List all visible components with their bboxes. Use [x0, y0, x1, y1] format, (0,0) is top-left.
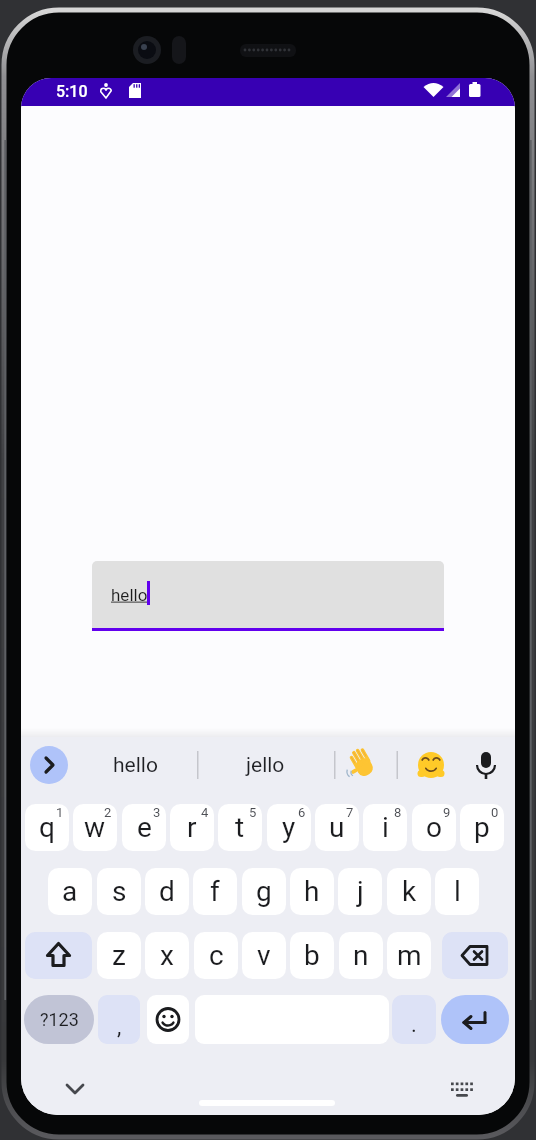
- button[interactable]: n: [339, 932, 383, 979]
- button[interactable]: p: [460, 804, 504, 851]
- button[interactable]: [30, 746, 68, 784]
- button[interactable]: t: [218, 804, 262, 851]
- button[interactable]: s: [97, 868, 141, 915]
- button[interactable]: [410, 746, 452, 784]
- staticText: 6: [298, 805, 306, 820]
- button[interactable]: [199, 1094, 335, 1112]
- button[interactable]: q: [25, 804, 69, 851]
- button[interactable]: jello: [221, 746, 309, 784]
- button[interactable]: e: [122, 804, 166, 851]
- staticText: s: [112, 875, 127, 908]
- staticText: o: [426, 811, 442, 844]
- button[interactable]: v: [242, 932, 286, 979]
- staticText: h: [304, 875, 320, 908]
- button[interactable]: j: [338, 868, 382, 915]
- staticText: hello: [113, 753, 158, 778]
- button[interactable]: hello: [92, 561, 444, 628]
- staticText: jello: [246, 753, 285, 778]
- staticText: 3: [153, 805, 161, 820]
- button[interactable]: ?123: [24, 995, 94, 1044]
- button[interactable]: d: [145, 868, 189, 915]
- button[interactable]: f: [193, 868, 237, 915]
- staticText: 2: [104, 805, 112, 820]
- staticText: r: [187, 811, 197, 844]
- staticText: l: [454, 875, 461, 908]
- button[interactable]: [57, 1071, 93, 1103]
- staticText: u: [329, 811, 345, 844]
- staticText: w: [84, 811, 106, 844]
- button[interactable]: ,: [98, 995, 140, 1044]
- button[interactable]: .: [392, 995, 436, 1044]
- staticText: z: [112, 939, 126, 972]
- staticText: e: [137, 811, 152, 844]
- staticText: 8: [394, 805, 402, 820]
- button[interactable]: u: [315, 804, 359, 851]
- button[interactable]: w: [73, 804, 117, 851]
- button[interactable]: hello: [91, 746, 179, 784]
- staticText: 5: [249, 805, 257, 820]
- staticText: k: [402, 875, 417, 908]
- button[interactable]: [441, 995, 509, 1044]
- button[interactable]: [442, 932, 508, 979]
- staticText: y: [282, 811, 296, 844]
- staticText: v: [257, 939, 271, 972]
- staticText: 1: [56, 805, 64, 820]
- staticText: ?123: [40, 1009, 79, 1030]
- staticText: p: [474, 811, 490, 844]
- staticText: c: [209, 939, 224, 972]
- button[interactable]: [25, 932, 92, 979]
- button[interactable]: h: [290, 868, 334, 915]
- staticText: 0: [491, 805, 499, 820]
- button[interactable]: z: [97, 932, 141, 979]
- staticText: 5:10: [56, 82, 88, 101]
- staticText: d: [159, 875, 175, 908]
- staticText: .: [411, 1012, 417, 1038]
- staticText: a: [62, 875, 78, 908]
- button[interactable]: [147, 995, 189, 1044]
- staticText: 4: [201, 805, 209, 820]
- staticText: i: [382, 811, 389, 844]
- button[interactable]: [342, 746, 384, 784]
- button[interactable]: b: [290, 932, 334, 979]
- button[interactable]: y: [267, 804, 311, 851]
- button[interactable]: o: [412, 804, 456, 851]
- button[interactable]: x: [145, 932, 189, 979]
- staticText: 7: [346, 805, 354, 820]
- staticText: n: [353, 939, 369, 972]
- staticText: x: [160, 939, 174, 972]
- button[interactable]: i: [363, 804, 407, 851]
- staticText: hello: [111, 585, 148, 605]
- button[interactable]: k: [387, 868, 431, 915]
- button[interactable]: a: [48, 868, 92, 915]
- button[interactable]: c: [194, 932, 238, 979]
- staticText: q: [39, 811, 55, 844]
- staticText: g: [256, 875, 272, 908]
- button[interactable]: l: [435, 868, 479, 915]
- button[interactable]: m: [387, 932, 431, 979]
- staticText: f: [210, 875, 220, 908]
- button[interactable]: r: [170, 804, 214, 851]
- staticText: m: [397, 939, 422, 972]
- staticText: 9: [443, 805, 451, 820]
- button[interactable]: [465, 746, 507, 784]
- button[interactable]: [444, 1071, 480, 1103]
- staticText: ,: [117, 1014, 122, 1040]
- staticText: j: [357, 875, 364, 908]
- staticText: t: [235, 811, 245, 844]
- button[interactable]: g: [242, 868, 286, 915]
- staticText: b: [304, 939, 320, 972]
